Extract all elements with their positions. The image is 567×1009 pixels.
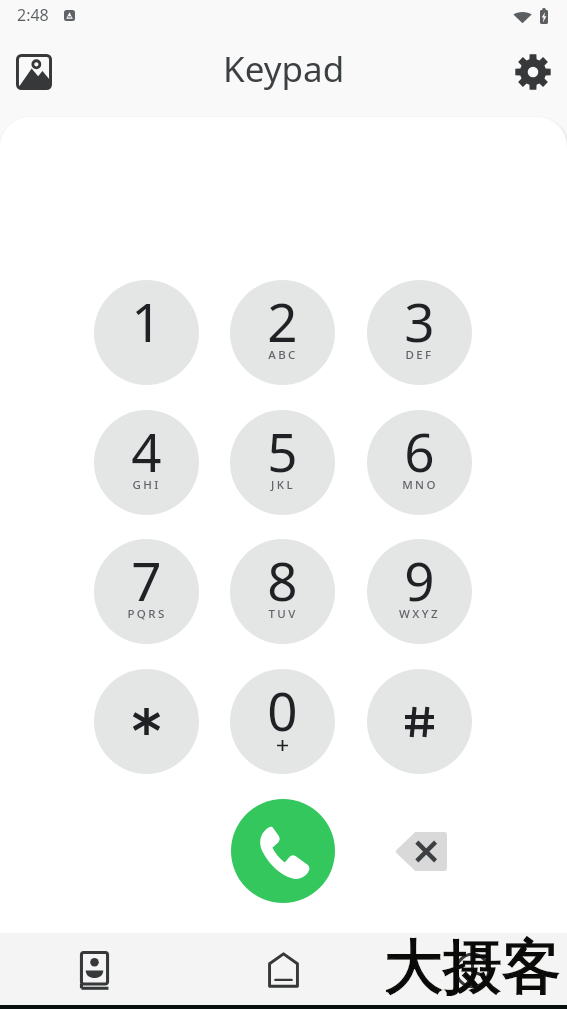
staticText: 7 [131, 544, 162, 616]
button[interactable]: Home [189, 933, 378, 1005]
staticText: TUV [268, 606, 298, 622]
staticText: JKL [271, 477, 295, 493]
staticText: 3 [404, 285, 435, 357]
staticText: 8 [267, 544, 298, 616]
staticText: GHI [132, 477, 161, 493]
staticText: MNO [402, 477, 438, 493]
button[interactable]: 1 [94, 280, 199, 385]
staticText: 5 [267, 415, 298, 487]
staticText: 9 [404, 544, 435, 616]
staticText: Keypad [223, 45, 345, 93]
button[interactable]: Backspace [385, 822, 457, 880]
button[interactable]: 4 [94, 410, 199, 515]
button[interactable]: 2 [230, 280, 335, 385]
button[interactable]: Recents [378, 933, 567, 1005]
staticText: DEF [405, 347, 434, 363]
button[interactable]: Settings [508, 47, 558, 97]
staticText: 2:48 [17, 4, 49, 26]
button[interactable]: 3 [367, 280, 472, 385]
button[interactable]: Photo [9, 47, 59, 97]
button[interactable]: Call [231, 799, 335, 903]
staticText: 2 [267, 285, 298, 357]
button[interactable]: 7 [94, 539, 199, 644]
staticText: 6 [404, 415, 435, 487]
button[interactable]: 8 [230, 539, 335, 644]
staticText: ABC [268, 347, 298, 363]
button[interactable]: 5 [230, 410, 335, 515]
staticText: 4 [131, 415, 162, 487]
button[interactable]: 9 [367, 539, 472, 644]
staticText: 1 [131, 285, 162, 357]
button[interactable]: Contacts [0, 933, 189, 1005]
button[interactable]: 6 [367, 410, 472, 515]
staticText: PQRS [127, 606, 167, 622]
staticText: 0 [267, 674, 298, 746]
button[interactable] [367, 669, 472, 774]
staticText: WXYZ [399, 606, 440, 622]
button[interactable]: 0 [230, 669, 335, 774]
button[interactable] [94, 669, 199, 774]
